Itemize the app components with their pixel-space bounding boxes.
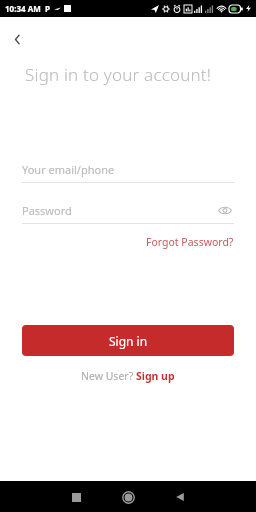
staticText: 10:34 AM — [5, 3, 41, 14]
button[interactable]: Back — [4, 26, 30, 52]
button[interactable]: Sign up — [136, 369, 175, 383]
staticText: Password — [22, 203, 72, 218]
button[interactable]: Recent apps — [63, 484, 89, 510]
staticText: Sign in — [109, 333, 148, 349]
staticText: Sign in to your account! — [25, 63, 212, 86]
staticText: New User? — [81, 369, 136, 383]
staticText: Sign up — [136, 369, 175, 383]
staticText: Forgot Password? — [146, 235, 234, 249]
staticText: Your email/phone — [22, 162, 115, 177]
button[interactable]: Show password — [216, 201, 234, 219]
button[interactable]: Your email/phone — [22, 160, 234, 178]
button[interactable]: Back — [167, 484, 193, 510]
button[interactable]: Home — [115, 484, 141, 510]
button[interactable]: Forgot Password? — [144, 233, 236, 251]
staticText: P — [45, 3, 50, 14]
button[interactable]: Sign in — [22, 325, 234, 356]
